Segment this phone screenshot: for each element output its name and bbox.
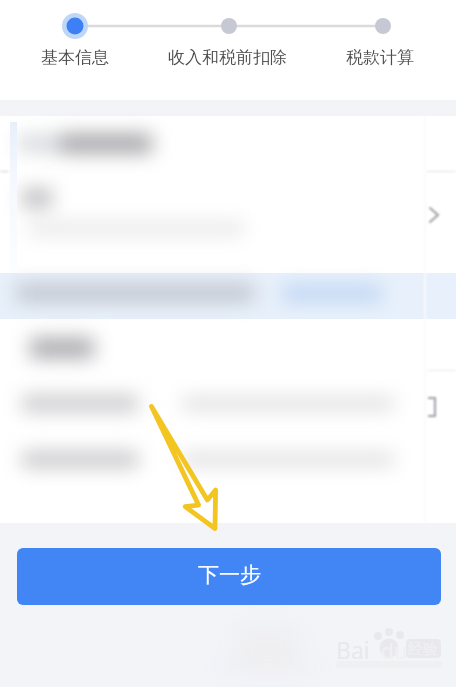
button[interactable]: 基本信息 [0,47,150,68]
button[interactable]: 收入和税前扣除 [150,47,304,68]
button[interactable]: 税款计算 [304,47,456,68]
staticText: 经验 [408,640,438,659]
staticText: 下一步 [198,562,261,588]
staticText: Bai [336,634,370,665]
staticText: 基本信息 [41,47,109,68]
staticText: 税款计算 [346,47,414,68]
button[interactable]: 下一步 [17,548,441,605]
other: Baidu Jingyan watermark [0,0,456,687]
staticText: 收入和税前扣除 [168,47,287,68]
staticText: du [381,637,407,666]
